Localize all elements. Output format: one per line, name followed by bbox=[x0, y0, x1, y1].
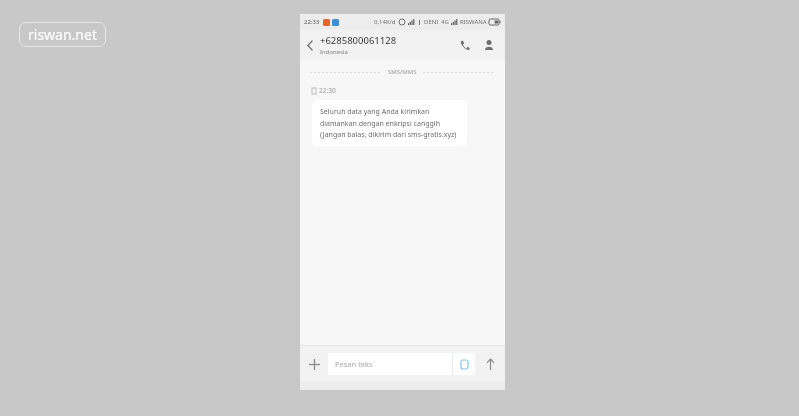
staticText: 0,14K/d bbox=[374, 18, 396, 26]
button[interactable]: Contact details bbox=[477, 33, 501, 57]
button[interactable]: Back bbox=[300, 35, 320, 55]
button[interactable]: Emoji bbox=[453, 353, 475, 375]
staticText: DENI bbox=[424, 18, 439, 26]
button[interactable]: Add attachment bbox=[300, 350, 328, 378]
staticText: Pesan teks bbox=[335, 359, 452, 369]
button[interactable]: Send bbox=[475, 349, 505, 379]
button[interactable]: Seluruh data yang Anda kirimkan diamanka… bbox=[312, 100, 467, 146]
button[interactable]: Call bbox=[453, 33, 477, 57]
staticText: riswan.net bbox=[28, 25, 97, 44]
button[interactable]: Pesan teks bbox=[328, 353, 475, 375]
staticText: 4G bbox=[441, 18, 449, 26]
staticText: 22:33 bbox=[304, 18, 320, 26]
staticText: 22:30 bbox=[319, 86, 336, 95]
staticText: RISWANA bbox=[460, 18, 487, 26]
staticText: +6285800061128 bbox=[320, 34, 397, 47]
staticText: Seluruh data yang Anda kirimkan diamanka… bbox=[320, 107, 459, 139]
staticText: Indonesia bbox=[320, 48, 348, 56]
staticText: SMS/MMS bbox=[388, 68, 417, 76]
